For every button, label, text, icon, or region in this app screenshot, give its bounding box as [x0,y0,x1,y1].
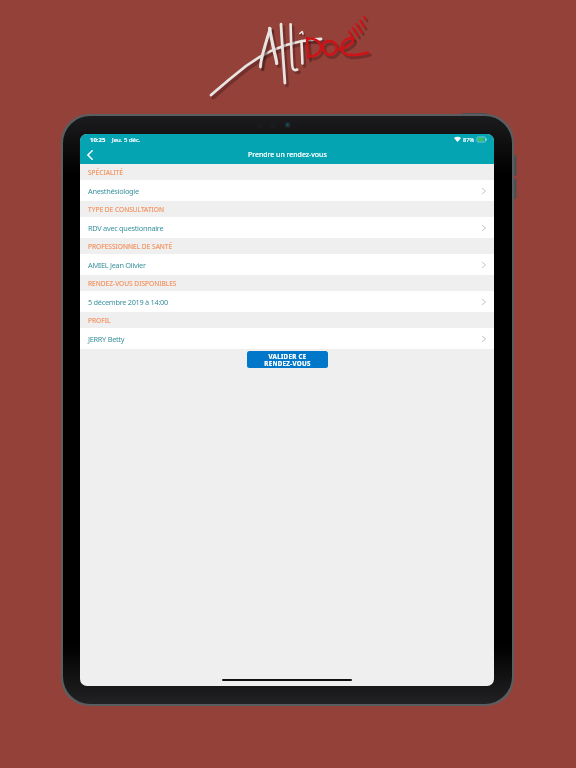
staticText: PROFIL [88,316,111,325]
staticText: SPÉCIALITÉ [88,168,123,177]
staticText: TYPE DE CONSULTATION [88,205,164,214]
button[interactable]: JERRY Betty [80,328,494,349]
staticText: AMIEL Jean Olivier [88,260,146,270]
staticText: VALIDER CE RENDEZ-VOUS [264,352,311,367]
button[interactable]: AMIEL Jean Olivier [80,254,494,275]
button[interactable]: Back [80,145,99,164]
button[interactable]: 5 décembre 2019 à 14:00 [80,291,494,312]
staticText: 5 décembre 2019 à 14:00 [88,297,168,307]
staticText: RDV avec questionnaire [88,223,164,233]
staticText: RENDEZ-VOUS DISPONIBLES [88,279,177,288]
staticText: Anesthésiologie [88,186,139,196]
staticText: PROFESSIONNEL DE SANTÉ [88,242,173,251]
staticText: 10:25 [90,136,106,144]
staticText: 87% [463,136,475,144]
staticText: Prendre un rendez-vous [248,150,327,160]
button[interactable]: RDV avec questionnaire [80,217,494,238]
staticText: JERRY Betty [88,334,125,344]
staticText: Jeu. 5 déc. [112,136,141,144]
button[interactable]: Anesthésiologie [80,180,494,201]
button[interactable]: VALIDER CE RENDEZ-VOUS [247,351,328,368]
